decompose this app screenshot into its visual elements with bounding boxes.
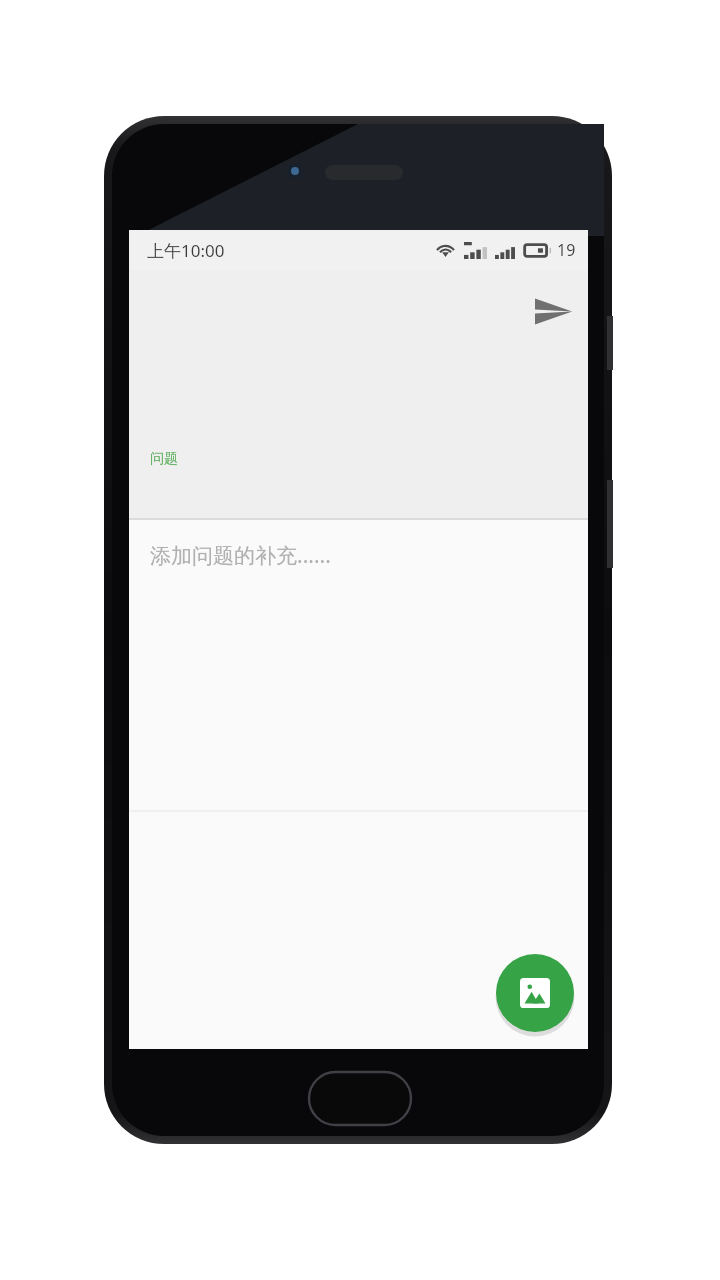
button[interactable]: Send <box>524 282 582 340</box>
button[interactable]: Add image <box>496 954 574 1032</box>
staticText: 添加问题的补充...... <box>150 541 331 570</box>
button[interactable]: 添加问题的补充...... <box>129 520 588 810</box>
button[interactable]: 问题 <box>129 450 588 502</box>
staticText: 问题 <box>150 450 178 468</box>
staticText: 上午10:00 <box>147 239 225 262</box>
staticText: 19 <box>557 239 576 261</box>
